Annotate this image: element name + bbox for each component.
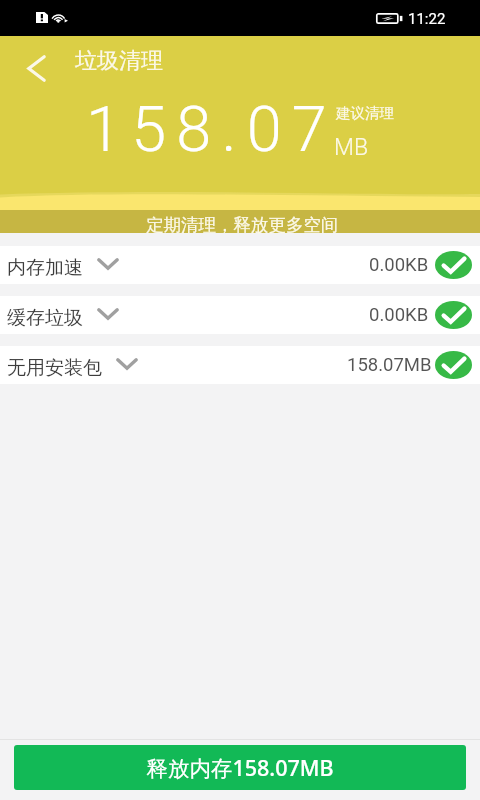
staticText: 定期清理，释放更多空间 xyxy=(146,214,339,236)
staticText: 内存加速 xyxy=(7,256,83,280)
staticText: 缓存垃圾 xyxy=(7,306,83,330)
staticText: 垃圾清理 xyxy=(75,47,163,75)
staticText: MB xyxy=(334,134,368,161)
button[interactable]: 内存加速 xyxy=(0,246,480,284)
staticText: 158.07MB xyxy=(347,354,432,376)
staticText: 释放内存158.07MB xyxy=(146,753,334,782)
staticText: 0.00KB xyxy=(369,254,429,276)
button[interactable]: Back xyxy=(12,44,60,92)
staticText: 无用安装包 xyxy=(7,356,102,380)
button[interactable]: 无用安装包 xyxy=(0,346,480,384)
button[interactable]: 缓存垃圾 xyxy=(0,296,480,334)
staticText: 建议清理 xyxy=(336,104,394,122)
staticText: 0.00KB xyxy=(369,304,429,326)
staticText: 158.07 xyxy=(86,93,337,167)
button[interactable]: 释放内存158.07MB xyxy=(14,745,466,790)
staticText: 11:22 xyxy=(408,10,446,28)
